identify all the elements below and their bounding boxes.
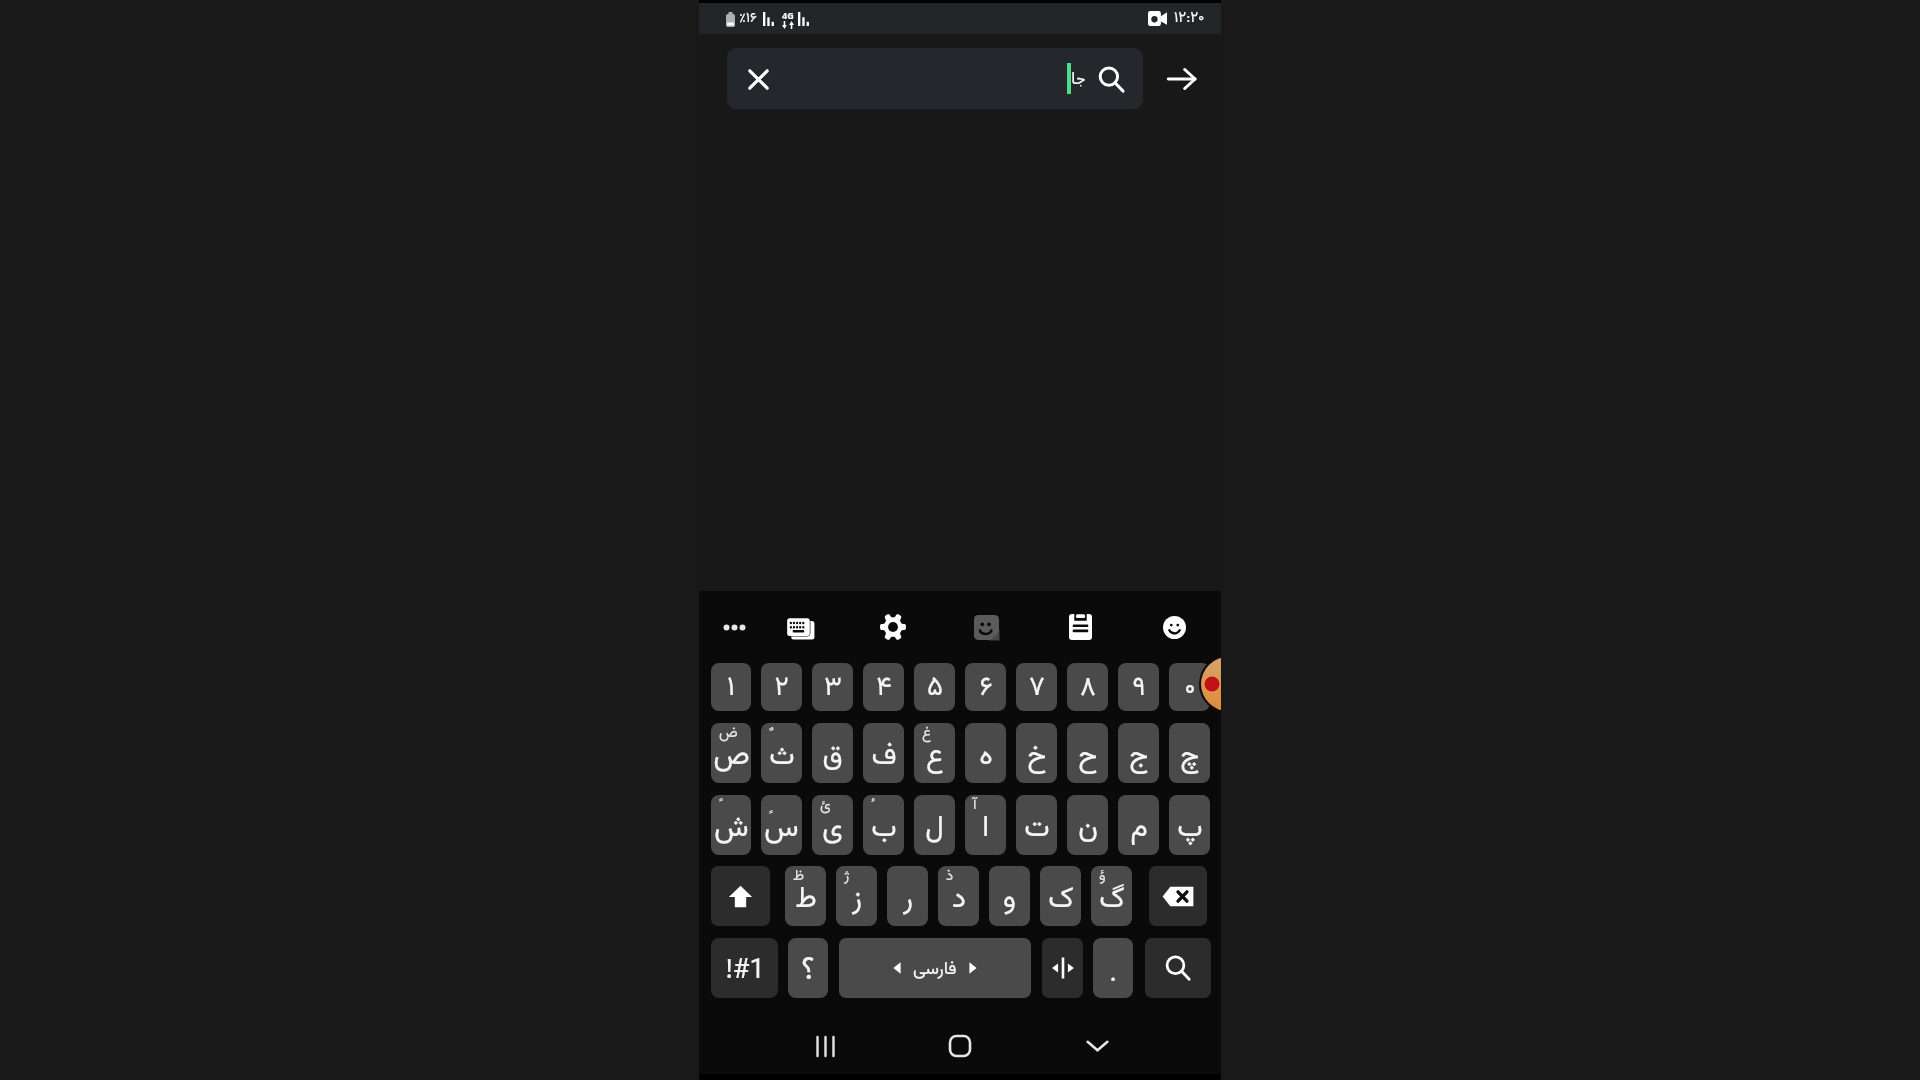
button[interactable]: Emoji — [1155, 608, 1193, 646]
button[interactable]: ۲ — [761, 663, 802, 711]
staticText: ۶ — [979, 667, 993, 709]
button[interactable]: ۱ — [711, 663, 751, 711]
staticText: ذ — [946, 866, 954, 888]
button[interactable]: س — [761, 795, 802, 855]
staticText: ک — [1048, 877, 1074, 922]
button[interactable]: ۳ — [812, 663, 853, 711]
staticText: ص — [713, 734, 750, 779]
button[interactable]: Settings — [874, 608, 912, 646]
button[interactable]: ط — [785, 866, 826, 926]
button[interactable]: ج — [1118, 723, 1159, 783]
button[interactable]: ۶ — [965, 663, 1006, 711]
staticText: ع — [926, 734, 944, 779]
staticText: ز — [852, 877, 862, 922]
staticText: ۱۲:۲۰ — [1174, 7, 1205, 30]
button[interactable]: ب — [863, 795, 904, 855]
staticText: ۸ — [1080, 667, 1096, 709]
button[interactable]: Clear — [727, 48, 1143, 109]
staticText: ۴ — [876, 667, 892, 709]
button[interactable]: Shift — [711, 866, 770, 926]
staticText: س — [764, 806, 799, 851]
button[interactable]: ک — [1040, 866, 1081, 926]
button[interactable]: د — [938, 866, 979, 926]
staticText: !#1 — [725, 950, 765, 992]
staticText: چ — [1180, 734, 1200, 779]
button[interactable]: پ — [1169, 795, 1210, 855]
staticText: ۰ — [1184, 667, 1196, 709]
button[interactable]: Keyboard layouts — [781, 608, 819, 646]
button[interactable]: !#1 — [711, 938, 778, 998]
staticText: ظ — [793, 866, 805, 888]
staticText: ش — [714, 806, 749, 851]
staticText: ا — [982, 806, 989, 851]
button[interactable]: Search — [1093, 61, 1129, 97]
button[interactable]: Search — [1145, 938, 1211, 998]
button[interactable]: Clear — [743, 64, 773, 94]
staticText: ف — [871, 734, 897, 779]
staticText: ق — [822, 734, 843, 779]
staticText: ؟ — [801, 946, 815, 996]
staticText: و — [1003, 877, 1016, 922]
button[interactable]: ش — [711, 795, 751, 855]
staticText: ل — [925, 806, 944, 851]
button[interactable]: ت — [1016, 795, 1057, 855]
staticText: ی — [822, 806, 843, 851]
staticText: ۱ — [727, 667, 735, 709]
button[interactable]: فارسی — [839, 938, 1031, 998]
button[interactable]: م — [1118, 795, 1159, 855]
button[interactable]: Move cursor — [1042, 938, 1083, 998]
button[interactable]: گ — [1091, 866, 1132, 926]
staticText: خ — [1027, 734, 1047, 779]
button[interactable]: Home — [934, 1022, 986, 1070]
button[interactable]: Backspace — [1149, 866, 1207, 926]
button[interactable]: . — [1093, 938, 1133, 998]
button[interactable]: و — [989, 866, 1030, 926]
staticText: د — [952, 877, 966, 922]
staticText: ؤ — [1099, 866, 1106, 888]
button[interactable]: Hide keyboard — [1071, 1022, 1123, 1070]
button[interactable]: ۹ — [1118, 663, 1159, 711]
button[interactable]: ۷ — [1016, 663, 1057, 711]
staticText: ج — [1129, 734, 1149, 779]
button[interactable]: ث — [761, 723, 802, 783]
button[interactable]: ف — [863, 723, 904, 783]
staticText: ۲ — [774, 667, 789, 709]
staticText: ۵ — [927, 667, 943, 709]
staticText: ه — [979, 734, 993, 779]
staticText: آ — [973, 795, 977, 817]
staticText: ح — [1078, 734, 1098, 779]
staticText: ۳ — [824, 667, 842, 709]
staticText: ب — [871, 806, 897, 851]
staticText: ض — [719, 723, 738, 745]
button[interactable]: Clipboard — [1061, 608, 1099, 646]
button[interactable]: ۸ — [1067, 663, 1108, 711]
button[interactable]: ص — [711, 723, 751, 783]
button[interactable]: Recents — [799, 1022, 851, 1070]
button[interactable]: Stickers — [967, 608, 1005, 646]
button[interactable]: ع — [914, 723, 955, 783]
button[interactable]: ز — [836, 866, 877, 926]
staticText: گ — [1099, 877, 1125, 922]
button[interactable]: ه — [965, 723, 1006, 783]
button[interactable]: ر — [887, 866, 928, 926]
staticText: . — [1109, 954, 1117, 995]
button[interactable]: ی — [812, 795, 853, 855]
button[interactable]: ۰ — [1169, 663, 1210, 711]
staticText: فارسی — [913, 956, 957, 984]
staticText: ۷ — [1029, 667, 1045, 709]
button[interactable]: ۴ — [863, 663, 904, 711]
button[interactable]: ا — [965, 795, 1006, 855]
button[interactable]: ؟ — [788, 938, 828, 998]
button[interactable]: چ — [1169, 723, 1210, 783]
button[interactable]: ح — [1067, 723, 1108, 783]
staticText: ن — [1078, 806, 1098, 851]
button[interactable]: More — [715, 608, 753, 646]
staticText: جا — [1071, 69, 1086, 88]
button[interactable]: Go — [1161, 58, 1202, 99]
button[interactable]: خ — [1016, 723, 1057, 783]
staticText: ٪۱۶ — [739, 8, 757, 30]
button[interactable]: ن — [1067, 795, 1108, 855]
button[interactable]: ل — [914, 795, 955, 855]
button[interactable]: ۵ — [914, 663, 955, 711]
button[interactable]: ق — [812, 723, 853, 783]
